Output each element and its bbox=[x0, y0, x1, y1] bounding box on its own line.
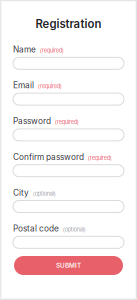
staticText: SUBMIT bbox=[56, 262, 81, 269]
staticText: (required) bbox=[88, 154, 112, 161]
staticText: Name bbox=[13, 44, 36, 54]
staticText: (optional) bbox=[63, 226, 86, 233]
staticText: (required) bbox=[38, 83, 62, 90]
staticText: (required) bbox=[40, 47, 64, 54]
staticText: (optional) bbox=[33, 190, 56, 197]
staticText: Confirm password bbox=[13, 152, 84, 162]
staticText: Email bbox=[13, 80, 34, 90]
staticText: Password bbox=[13, 116, 51, 126]
staticText: (required) bbox=[55, 119, 79, 125]
staticText: City bbox=[13, 188, 29, 198]
button[interactable]: SUBMIT bbox=[14, 256, 123, 275]
staticText: Postal code bbox=[13, 223, 59, 233]
staticText: Registration bbox=[35, 17, 101, 31]
